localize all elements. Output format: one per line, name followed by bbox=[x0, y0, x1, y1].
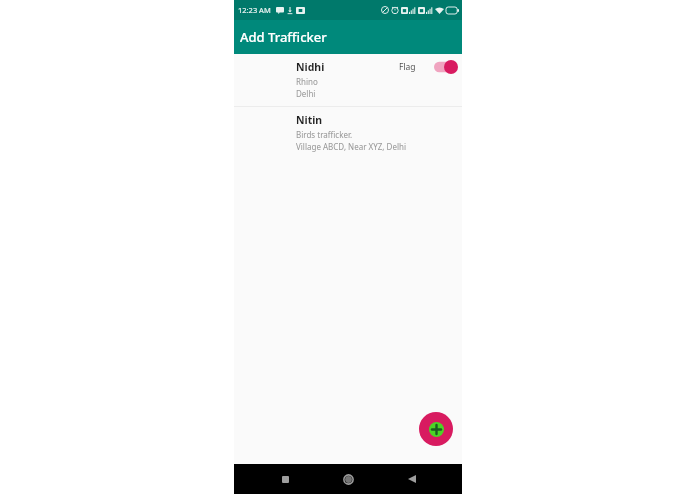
button[interactable]: Flag toggle bbox=[434, 60, 458, 74]
button[interactable]: Recent apps bbox=[272, 466, 298, 492]
button[interactable]: Home bbox=[335, 466, 361, 492]
staticText: Rhino bbox=[296, 76, 318, 87]
staticText: Flag bbox=[399, 61, 416, 73]
staticText: 12:23 AM bbox=[238, 5, 271, 15]
staticText: Birds trafficker. bbox=[296, 129, 353, 140]
staticText: Nitin bbox=[296, 113, 323, 127]
staticText: Village ABCD, Near XYZ, Delhi bbox=[296, 141, 407, 152]
button[interactable]: Add trafficker bbox=[419, 412, 453, 446]
button[interactable]: Nidhi bbox=[234, 54, 462, 106]
staticText: Delhi bbox=[296, 88, 316, 99]
button[interactable]: Nitin bbox=[234, 107, 462, 159]
staticText: Add Trafficker bbox=[240, 28, 327, 46]
staticText: Nidhi bbox=[296, 60, 325, 74]
button[interactable]: Back bbox=[399, 466, 425, 492]
